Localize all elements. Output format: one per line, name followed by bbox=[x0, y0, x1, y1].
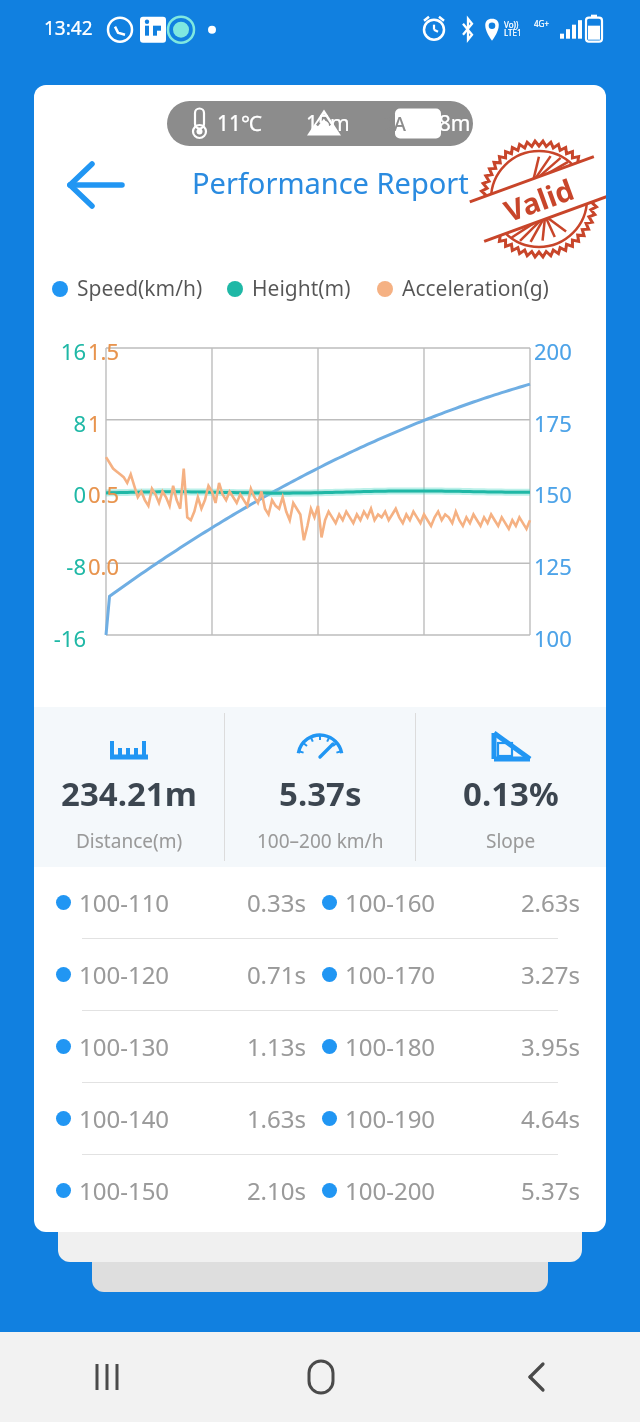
staticText: 100–200 km/h bbox=[257, 828, 384, 854]
staticText: 100-150 bbox=[79, 1174, 170, 1207]
staticText: 100-140 bbox=[79, 1102, 170, 1135]
staticText: 0.0 bbox=[88, 551, 120, 581]
staticText: 11℃ bbox=[217, 109, 262, 138]
staticText: 15m bbox=[306, 109, 350, 138]
staticText: -8 bbox=[42, 551, 86, 581]
staticText: 234.21m bbox=[61, 771, 197, 816]
staticText: 100-170 bbox=[345, 958, 436, 991]
staticText: 3.95s bbox=[436, 1030, 580, 1063]
button[interactable]: Home bbox=[214, 1332, 427, 1422]
staticText: Vo)) LTE1 bbox=[504, 19, 522, 38]
staticText: Height(m) bbox=[252, 274, 351, 303]
button[interactable]: 100-130 bbox=[34, 1011, 606, 1082]
staticText: 0.5 bbox=[88, 479, 120, 509]
staticText: 4.64s bbox=[436, 1102, 580, 1135]
staticText: 0 bbox=[42, 479, 86, 509]
staticText: 125 bbox=[534, 551, 572, 581]
staticText: 2.63s bbox=[436, 886, 580, 919]
button[interactable]: 5.37s bbox=[225, 707, 415, 867]
button[interactable]: Recent apps bbox=[0, 1332, 214, 1422]
staticText: 0.71s bbox=[170, 958, 306, 991]
staticText: 4G+ bbox=[534, 18, 549, 29]
button[interactable]: 100-140 bbox=[34, 1083, 606, 1154]
staticText: 13:42 bbox=[44, 15, 93, 41]
staticText: 100-130 bbox=[79, 1030, 170, 1063]
button[interactable]: 100-150 bbox=[34, 1155, 606, 1226]
button[interactable]: Back bbox=[427, 1332, 640, 1422]
staticText: 100-160 bbox=[345, 886, 436, 919]
staticText: 100-180 bbox=[345, 1030, 436, 1063]
staticText: 0.33s bbox=[170, 886, 306, 919]
button[interactable]: 234.21m bbox=[34, 707, 224, 867]
staticText: -16 bbox=[42, 623, 86, 653]
staticText: 8 bbox=[42, 408, 86, 438]
button[interactable]: 11℃ bbox=[167, 101, 473, 146]
staticText: DA bbox=[380, 111, 406, 137]
staticText: Performance Report bbox=[192, 163, 469, 202]
staticText: Slope bbox=[486, 828, 536, 854]
staticText: 5.37s bbox=[279, 771, 362, 816]
button[interactable]: 100-110 bbox=[34, 867, 606, 938]
staticText: 150 bbox=[534, 479, 572, 509]
staticText: 0.13% bbox=[463, 771, 559, 816]
button[interactable]: 100-120 bbox=[34, 939, 606, 1010]
staticText: -38m bbox=[420, 109, 471, 138]
staticText: 1.63s bbox=[170, 1102, 306, 1135]
staticText: 1.13s bbox=[170, 1030, 306, 1063]
staticText: 1 bbox=[88, 408, 101, 438]
staticText: 100-190 bbox=[345, 1102, 436, 1135]
staticText: 200 bbox=[534, 336, 572, 366]
staticText: 100-200 bbox=[345, 1174, 436, 1207]
button[interactable]: 0.13% bbox=[416, 707, 606, 867]
staticText: Distance(m) bbox=[76, 828, 183, 854]
staticText: 16 bbox=[42, 336, 86, 366]
staticText: 100 bbox=[534, 623, 572, 653]
staticText: 1.5 bbox=[88, 336, 120, 366]
staticText: 175 bbox=[534, 408, 572, 438]
staticText: 100-110 bbox=[79, 886, 170, 919]
staticText: Speed(km/h) bbox=[77, 274, 203, 303]
staticText: 100-120 bbox=[79, 958, 170, 991]
staticText: 2.10s bbox=[170, 1174, 306, 1207]
staticText: 3.27s bbox=[436, 958, 580, 991]
staticText: 5.37s bbox=[436, 1174, 580, 1207]
staticText: Acceleration(g) bbox=[402, 274, 549, 303]
staticText: Valid bbox=[498, 169, 579, 230]
button[interactable]: Back bbox=[54, 147, 130, 223]
